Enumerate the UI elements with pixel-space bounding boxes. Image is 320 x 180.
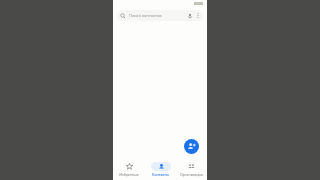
- staticText: Контакты: [152, 172, 169, 177]
- button[interactable]: Voice search: [187, 13, 193, 19]
- staticText: Избранные: [119, 172, 139, 177]
- staticText: Организация: [180, 172, 203, 177]
- button[interactable]: Избранные: [113, 158, 145, 180]
- button[interactable]: Create new contact: [184, 139, 199, 154]
- button[interactable]: More options: [196, 12, 200, 19]
- staticText: Поиск контактов: [129, 13, 187, 18]
- other: Search: [120, 13, 126, 19]
- button[interactable]: Search: [117, 10, 203, 21]
- button[interactable]: Контакты: [145, 158, 176, 180]
- button[interactable]: Организация: [176, 158, 207, 180]
